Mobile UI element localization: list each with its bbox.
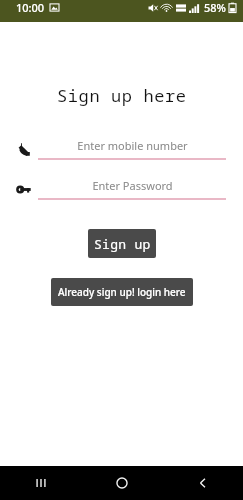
staticText: Enter Password — [92, 178, 173, 193]
button[interactable]: Phone — [14, 138, 226, 160]
staticText: Sign up here — [57, 84, 187, 107]
button[interactable]: Home — [81, 466, 162, 500]
button[interactable]: Back — [162, 466, 243, 500]
staticText: Sign up — [94, 235, 151, 253]
other: Password — [14, 180, 32, 198]
staticText: Already sign up! login here — [58, 285, 186, 299]
staticText: 10:00 — [16, 0, 45, 15]
staticText: Enter mobile number — [77, 138, 188, 153]
button[interactable]: Password — [14, 178, 226, 200]
staticText: 58% — [204, 0, 226, 15]
button[interactable]: Sign up — [88, 229, 156, 258]
button[interactable]: Already sign up! login here — [51, 278, 193, 306]
button[interactable]: Recents — [0, 466, 81, 500]
other: Phone — [14, 140, 32, 158]
